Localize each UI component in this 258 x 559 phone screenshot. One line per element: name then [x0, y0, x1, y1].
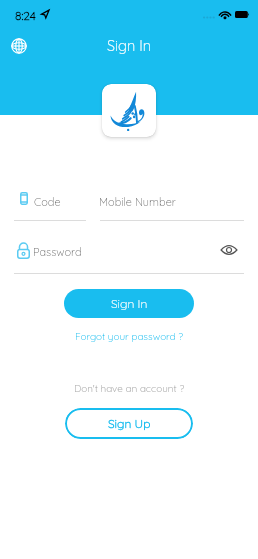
button[interactable]: Sign Up: [65, 408, 193, 439]
button[interactable]: Change language: [7, 34, 31, 58]
staticText: 8:24: [15, 8, 36, 23]
button[interactable]: Sign In: [64, 289, 194, 318]
staticText: Sign In: [0, 36, 258, 54]
button[interactable]: Forgot your password ?: [0, 329, 258, 343]
staticText: Forgot your password ?: [75, 330, 183, 343]
button[interactable]: Show password: [216, 238, 242, 262]
staticText: Mobile Number: [99, 195, 176, 209]
staticText: Sign In: [111, 296, 148, 311]
staticText: Sign Up: [108, 416, 151, 431]
staticText: Don't have an account ?: [0, 382, 258, 395]
staticText: Password: [33, 245, 82, 259]
staticText: Code: [34, 195, 61, 209]
